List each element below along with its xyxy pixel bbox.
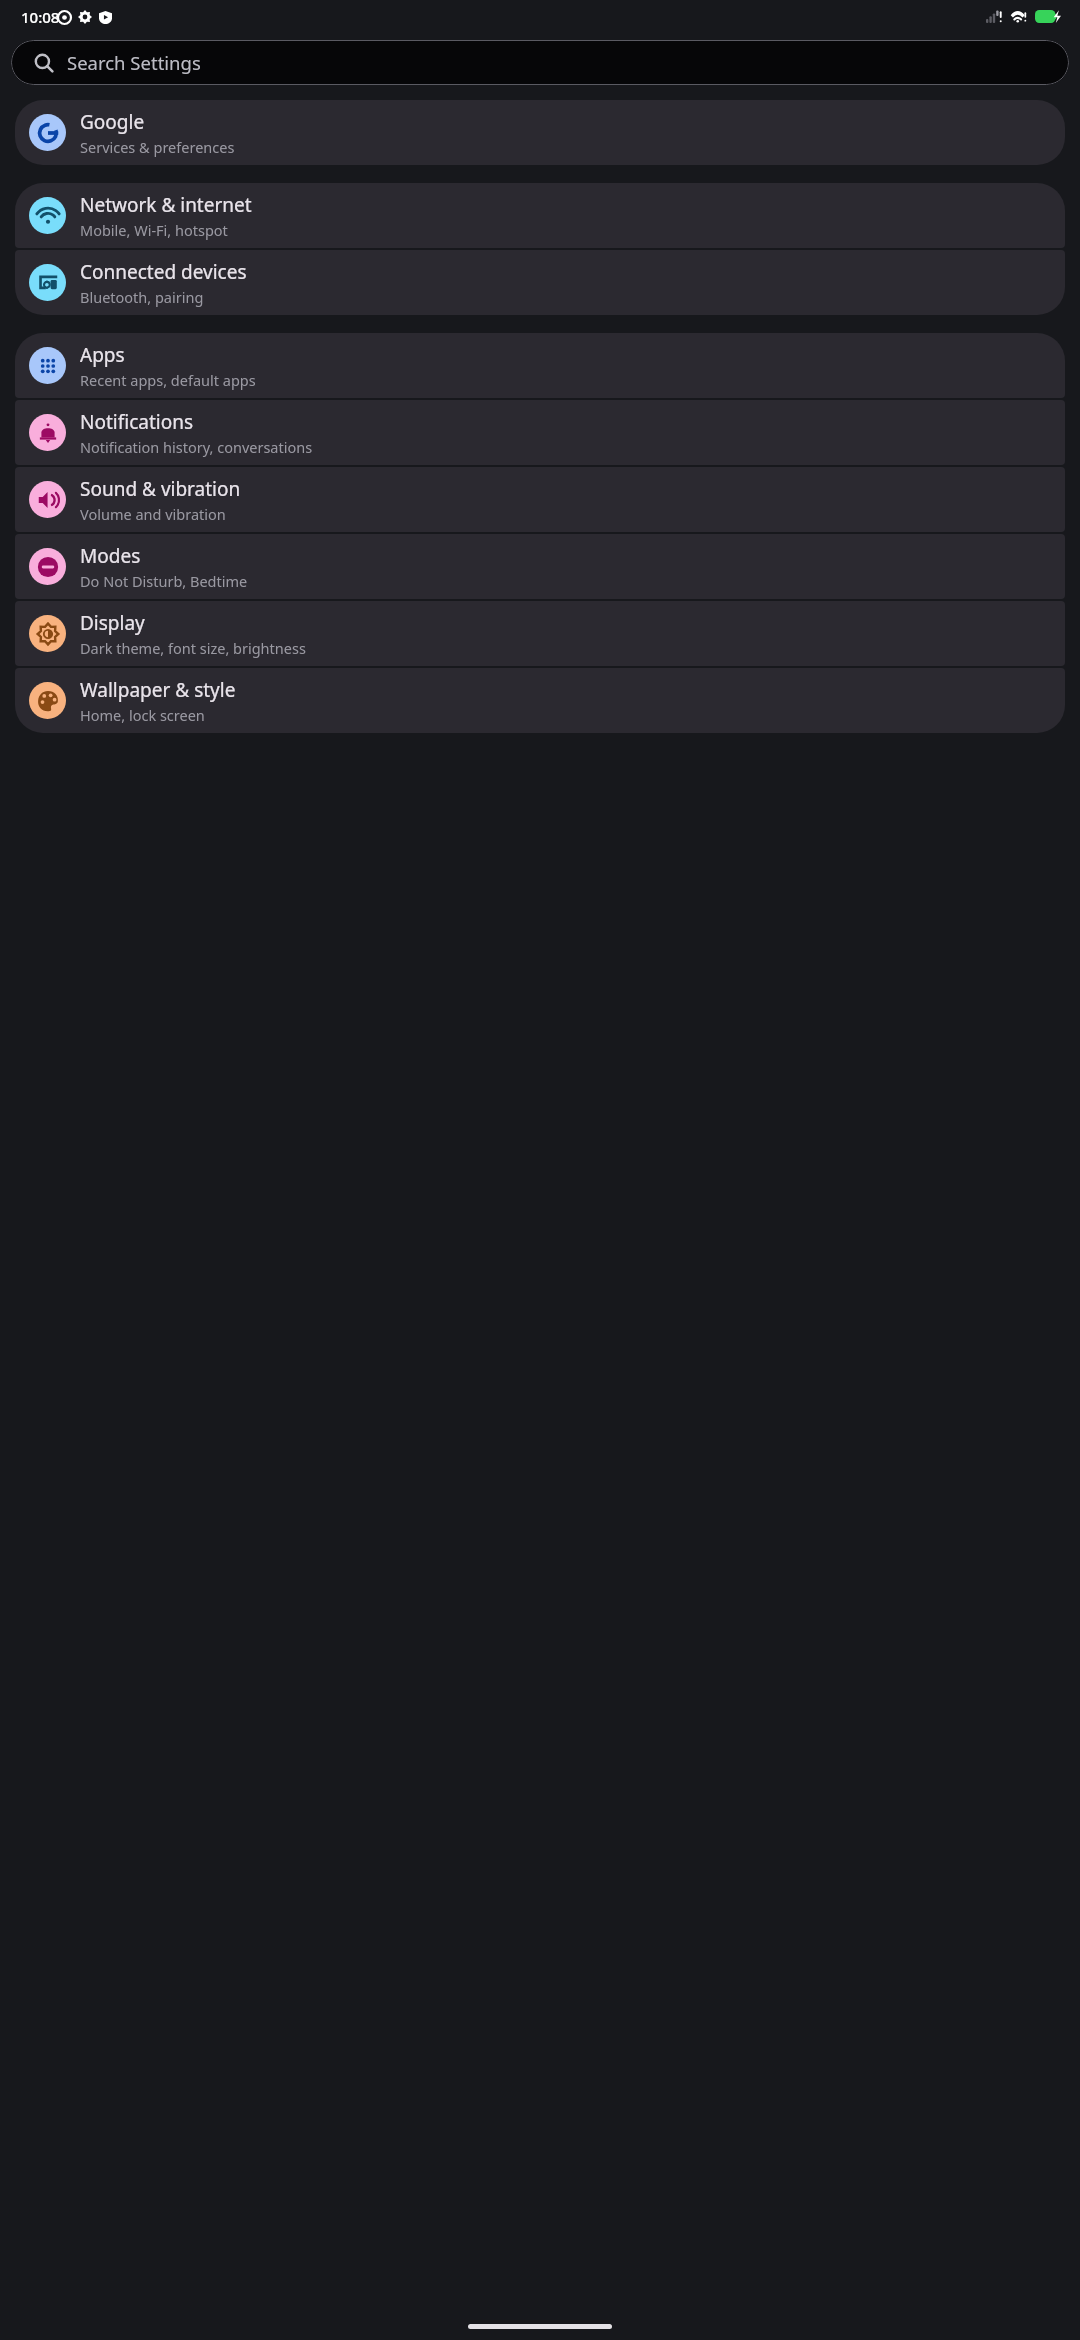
staticText: Mobile, Wi-Fi, hotspot <box>80 220 228 240</box>
staticText: Notification history, conversations <box>80 437 313 457</box>
button[interactable]: Google <box>15 100 1065 165</box>
button[interactable]: Display <box>15 601 1065 666</box>
staticText: 10:08 <box>21 7 60 27</box>
staticText: Modes <box>80 543 141 569</box>
staticText: Notifications <box>80 409 194 435</box>
button[interactable]: Sound & vibration <box>15 467 1065 532</box>
staticText: Network & internet <box>80 192 252 218</box>
staticText: Dark theme, font size, brightness <box>80 638 306 658</box>
staticText: Volume and vibration <box>80 504 226 524</box>
staticText: Bluetooth, pairing <box>80 287 204 307</box>
staticText: Connected devices <box>80 259 247 285</box>
button[interactable]: Connected devices <box>15 250 1065 315</box>
staticText: Search Settings <box>67 50 201 75</box>
staticText: Sound & vibration <box>80 476 241 502</box>
staticText: Google <box>80 109 145 135</box>
button[interactable]: Notifications <box>15 400 1065 465</box>
button[interactable]: Search Settings <box>11 40 1069 85</box>
staticText: Display <box>80 610 145 636</box>
button[interactable]: Wallpaper & style <box>15 668 1065 733</box>
staticText: Services & preferences <box>80 137 235 157</box>
button[interactable]: Network & internet <box>15 183 1065 248</box>
button[interactable]: Modes <box>15 534 1065 599</box>
staticText: Wallpaper & style <box>80 677 236 703</box>
staticText: Apps <box>80 342 125 368</box>
staticText: Home, lock screen <box>80 705 205 725</box>
staticText: Do Not Disturb, Bedtime <box>80 571 248 591</box>
button[interactable]: Apps <box>15 333 1065 398</box>
staticText: Recent apps, default apps <box>80 370 256 390</box>
